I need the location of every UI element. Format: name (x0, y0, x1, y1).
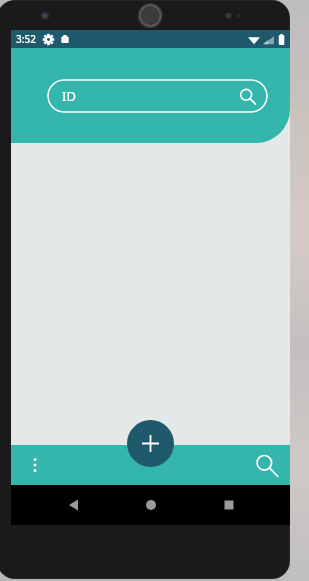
button[interactable]: ID (47, 79, 268, 113)
button[interactable]: Add (127, 420, 174, 467)
staticText: ID (62, 87, 76, 105)
staticText: 3:52 (16, 32, 36, 46)
other: Search (239, 88, 256, 105)
button[interactable]: Recent apps (212, 488, 246, 522)
button[interactable]: Home (134, 488, 168, 522)
button[interactable]: Search (252, 451, 280, 479)
button[interactable]: Back (55, 488, 89, 522)
button[interactable]: More options (21, 451, 49, 479)
